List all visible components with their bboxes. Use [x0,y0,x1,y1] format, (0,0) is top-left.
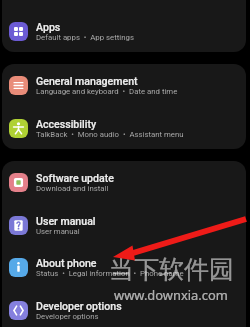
staticText: Developer options [36,312,99,321]
staticText: Default apps • App settings [36,33,134,42]
button[interactable]: Apps [2,10,246,52]
staticText: Developer options [36,300,122,312]
button[interactable]: About phone [2,246,246,289]
staticText: Download and install [36,184,109,193]
staticText: Software update [36,172,114,184]
button[interactable]: General management [2,64,246,107]
staticText: User manual [36,215,96,227]
staticText: TalkBack • Mono audio • Assistant menu [36,130,184,139]
staticText: 当下软件园 [109,254,234,285]
staticText: User manual [36,227,80,236]
staticText: About phone [36,257,97,269]
staticText: General management [36,75,138,87]
staticText: Language and keyboard • Date and time [36,87,178,96]
button[interactable]: User manual [2,204,246,247]
button[interactable]: Developer options [2,289,246,327]
staticText: Accessibility [36,118,97,130]
button[interactable]: Accessibility [2,107,246,149]
staticText: Status • Legal information • Phone name [36,269,184,278]
button[interactable]: Software update [2,161,246,204]
staticText: www.downxia.com [114,286,228,304]
staticText: Apps [36,21,61,33]
